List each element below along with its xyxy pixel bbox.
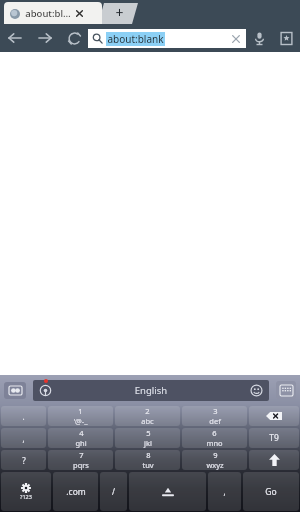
- button[interactable]: Settings: [39, 384, 52, 397]
- button[interactable]: T9: [249, 428, 299, 448]
- staticText: ,: [22, 433, 25, 444]
- staticText: pqrs: [73, 460, 89, 470]
- button[interactable]: 3: [182, 406, 247, 426]
- button[interactable]: Back: [0, 24, 30, 52]
- button[interactable]: Voice search: [246, 24, 273, 52]
- staticText: ?123: [20, 493, 32, 500]
- button[interactable]: Space: [129, 472, 206, 511]
- staticText: jkl: [144, 438, 152, 448]
- staticText: mno: [206, 438, 223, 448]
- staticText: .com: [66, 486, 86, 498]
- button[interactable]: New tab: [110, 0, 128, 24]
- button[interactable]: ,: [208, 472, 241, 511]
- button[interactable]: 4: [48, 428, 113, 448]
- staticText: ghi: [75, 438, 87, 448]
- button[interactable]: Forward: [30, 24, 60, 52]
- button[interactable]: about:blank: [89, 30, 245, 47]
- button[interactable]: .com: [53, 472, 98, 511]
- button[interactable]: 6: [182, 428, 247, 448]
- button[interactable]: /: [100, 472, 127, 511]
- button[interactable]: Go: [243, 472, 299, 511]
- staticText: 3: [213, 406, 218, 416]
- button[interactable]: Symbols and settings: [1, 472, 51, 511]
- staticText: 2: [145, 406, 150, 416]
- staticText: +: [115, 3, 124, 22]
- button[interactable]: 7: [48, 450, 113, 470]
- staticText: T9: [269, 432, 279, 444]
- button[interactable]: Settings: [33, 380, 269, 401]
- staticText: ,: [223, 486, 226, 497]
- button[interactable]: Bookmarks: [273, 24, 300, 52]
- button[interactable]: Hide keyboard: [276, 381, 296, 399]
- staticText: tuv: [142, 460, 154, 470]
- staticText: '@-_: [73, 416, 88, 426]
- button[interactable]: 8: [115, 450, 180, 470]
- staticText: 8: [146, 450, 151, 460]
- button[interactable]: ,: [1, 428, 46, 448]
- button[interactable]: 2: [115, 406, 180, 426]
- staticText: 5: [146, 428, 151, 438]
- button[interactable]: ?: [1, 450, 46, 470]
- staticText: def: [209, 416, 221, 426]
- button[interactable]: 1: [48, 406, 113, 426]
- button[interactable]: 9: [182, 450, 247, 470]
- staticText: about:bl…: [25, 7, 71, 20]
- staticText: abc: [141, 416, 154, 426]
- button[interactable]: Close tab: [74, 8, 85, 19]
- staticText: Go: [265, 486, 277, 498]
- button[interactable]: about:bl…: [4, 2, 102, 24]
- button[interactable]: Keyboard options: [4, 382, 26, 399]
- staticText: about:blank: [107, 32, 164, 46]
- staticText: 1: [78, 406, 83, 416]
- staticText: /: [112, 486, 115, 497]
- button[interactable]: New tab: [0, 0, 300, 24]
- button[interactable]: Emoji: [250, 384, 263, 397]
- button[interactable]: Backspace: [249, 406, 299, 426]
- button[interactable]: .: [1, 406, 46, 426]
- staticText: English: [52, 384, 250, 397]
- staticText: .: [22, 411, 25, 422]
- button[interactable]: Clear: [230, 33, 242, 45]
- staticText: 6: [212, 428, 217, 438]
- button[interactable]: Reload: [60, 24, 88, 52]
- button[interactable]: 5: [115, 428, 180, 448]
- staticText: 9: [213, 450, 218, 460]
- button[interactable]: Shift: [249, 450, 299, 470]
- staticText: 4: [79, 428, 84, 438]
- staticText: wxyz: [206, 460, 224, 470]
- staticText: 7: [79, 450, 84, 460]
- staticText: ?: [22, 455, 26, 466]
